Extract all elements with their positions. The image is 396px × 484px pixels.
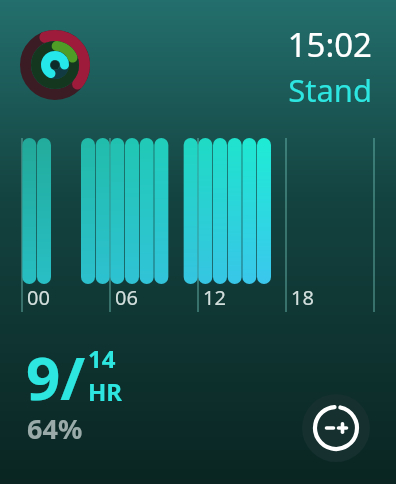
- staticText: 06: [115, 284, 138, 311]
- button[interactable]: 9/: [26, 336, 123, 418]
- button[interactable]: [0, 136, 396, 286]
- staticText: HR: [88, 375, 123, 408]
- staticText: 15:02: [287, 22, 372, 67]
- staticText: 64%: [27, 410, 83, 447]
- button[interactable]: Activity rings: [20, 30, 90, 100]
- staticText: 12: [203, 284, 226, 311]
- staticText: 9/: [26, 336, 86, 418]
- staticText: Stand: [288, 69, 372, 111]
- staticText: 18: [291, 284, 314, 311]
- button[interactable]: Adjust goal: [302, 394, 370, 462]
- staticText: 00: [27, 284, 50, 311]
- staticText: 14: [88, 342, 116, 375]
